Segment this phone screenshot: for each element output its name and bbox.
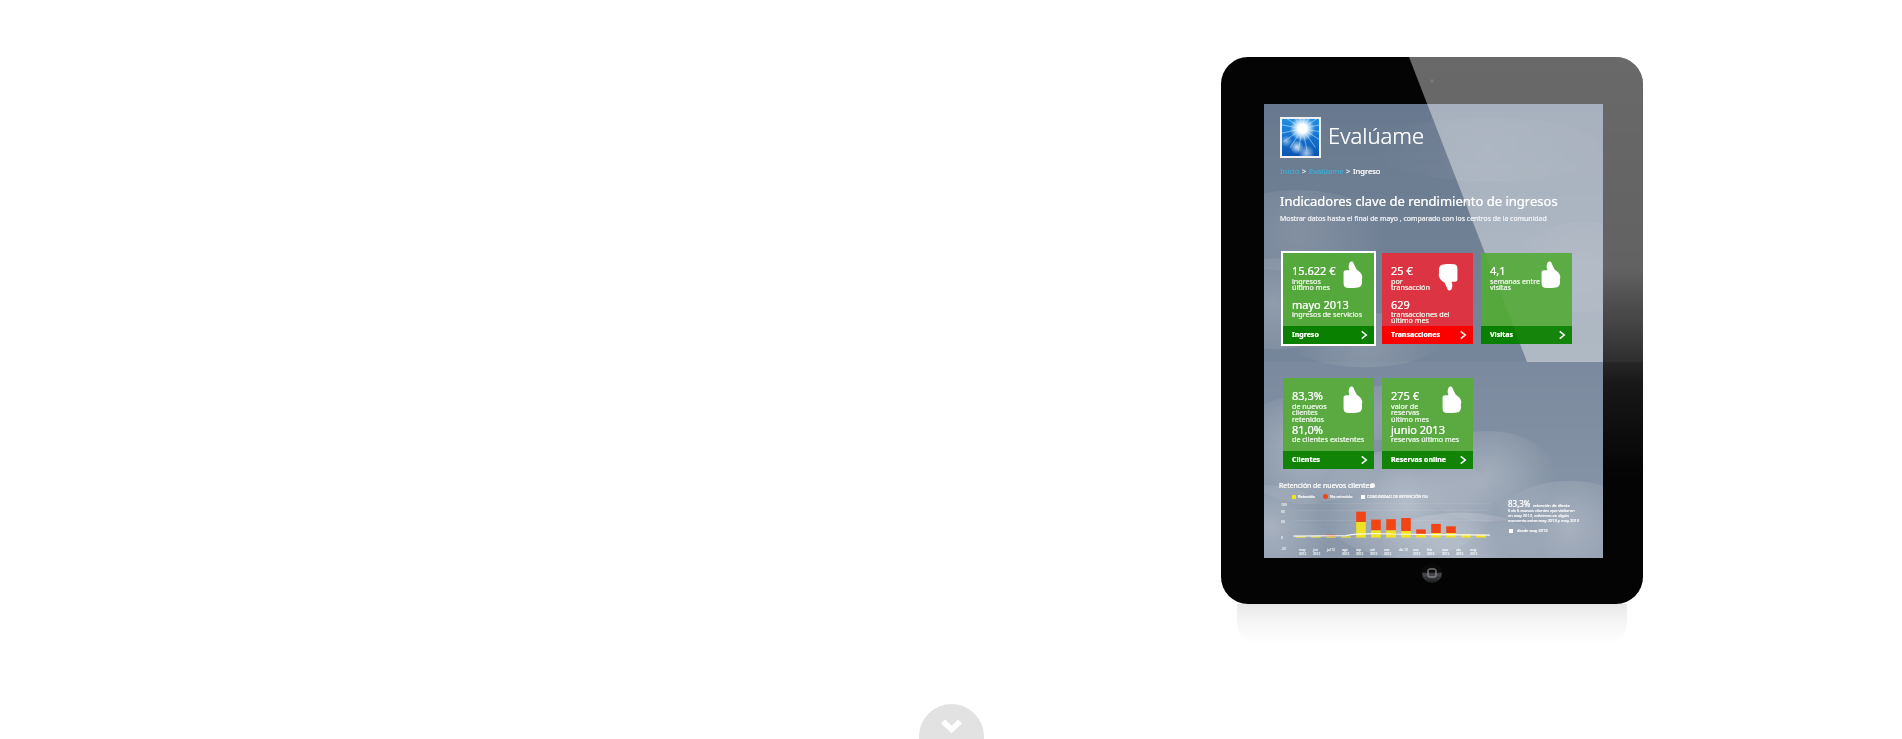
staticText: 83,3%	[1292, 388, 1323, 403]
staticText: nov 2012	[1384, 548, 1392, 556]
staticText: mayo 2013	[1292, 297, 1349, 312]
staticText: Inicio	[1280, 166, 1300, 176]
button[interactable]: 83,3%	[1283, 378, 1374, 469]
staticText: Reservas online	[1391, 455, 1446, 465]
staticText: COMUNIDAD DE RETENCIÓN (%)	[1367, 494, 1429, 499]
staticText: ago 2012	[1342, 548, 1350, 556]
staticText: reservas último mes	[1391, 434, 1460, 444]
staticText: Retenido	[1298, 494, 1315, 499]
staticText: >	[1300, 166, 1309, 176]
staticText: No retenido	[1330, 494, 1353, 499]
staticText: Retención de nuevos clientes	[1279, 481, 1373, 490]
staticText: may 2012	[1299, 548, 1307, 556]
staticText: 4,1	[1490, 263, 1506, 278]
staticText: 50	[1281, 519, 1285, 524]
staticText: ingresos de servicios	[1292, 309, 1363, 319]
staticText: ingresos	[1292, 276, 1321, 286]
staticText: retención de cliente	[1533, 503, 1571, 508]
staticText: -20	[1281, 546, 1286, 551]
staticText: último mes	[1292, 282, 1330, 292]
button[interactable]: Scroll down	[919, 704, 984, 739]
staticText: retenidos	[1292, 414, 1325, 424]
staticText: Ingreso	[1292, 330, 1319, 340]
staticText: >	[1344, 166, 1353, 176]
staticText: sep 2012	[1356, 548, 1364, 556]
staticText: transacción	[1391, 282, 1430, 292]
staticText: 629	[1391, 297, 1410, 312]
button[interactable]: 15.622 €	[1283, 253, 1374, 344]
staticText: feb 2013	[1427, 548, 1435, 556]
staticText: Transacciones	[1391, 330, 1441, 340]
staticText: 15.622 €	[1292, 263, 1336, 278]
staticText: jul 12	[1327, 548, 1336, 552]
staticText: de clientes existentes	[1292, 434, 1365, 444]
staticText: Ingreso	[1353, 166, 1381, 176]
staticText: 5 de 6 nuevos clientes que visitaron	[1508, 508, 1575, 513]
staticText: Indicadores clave de rendimiento de ingr…	[1280, 192, 1558, 210]
staticText: 80	[1281, 509, 1285, 514]
staticText: Clientes	[1292, 455, 1321, 465]
staticText: 275 €	[1391, 388, 1420, 403]
staticText: último mes	[1391, 315, 1429, 325]
staticText: por	[1391, 276, 1403, 286]
staticText: 100	[1281, 502, 1287, 507]
staticText: oct 2012	[1370, 548, 1378, 556]
staticText: último mes	[1391, 414, 1429, 424]
staticText: reservas	[1391, 407, 1420, 417]
staticText: transacciones del	[1391, 309, 1450, 319]
staticText: junio 2013	[1391, 422, 1445, 437]
staticText: semanas entre	[1490, 276, 1541, 286]
staticText: 83,3%	[1508, 498, 1531, 509]
staticText: mar 2013	[1442, 548, 1450, 556]
staticText: abr 2013	[1456, 548, 1464, 556]
staticText: Evalúame	[1309, 166, 1344, 176]
staticText: desde may 2013	[1517, 528, 1548, 533]
button[interactable]: 275 €	[1382, 378, 1473, 469]
staticText: 0	[1281, 535, 1283, 540]
staticText: dic 12	[1399, 548, 1408, 552]
staticText: clientes	[1292, 407, 1318, 417]
staticText: momento entre may 2013 y may 2013	[1508, 518, 1580, 523]
staticText: visitas	[1490, 282, 1511, 292]
staticText: 81,0%	[1292, 422, 1323, 437]
staticText: Evalúame	[1328, 120, 1425, 150]
staticText: valor de	[1391, 401, 1419, 411]
staticText: may 2013	[1470, 548, 1478, 556]
staticText: en may 2013, volvieron en algún	[1508, 513, 1569, 518]
staticText: de nuevos	[1292, 401, 1327, 411]
button[interactable]: 4,1	[1481, 253, 1572, 344]
staticText: ene 2013	[1413, 548, 1421, 556]
staticText: jun 2012	[1313, 548, 1321, 556]
button[interactable]: 25 €	[1382, 253, 1473, 344]
staticText: 25 €	[1391, 263, 1413, 278]
staticText: Mostrar datos hasta el final de mayo , c…	[1280, 214, 1547, 223]
staticText: Visitas	[1490, 330, 1513, 340]
